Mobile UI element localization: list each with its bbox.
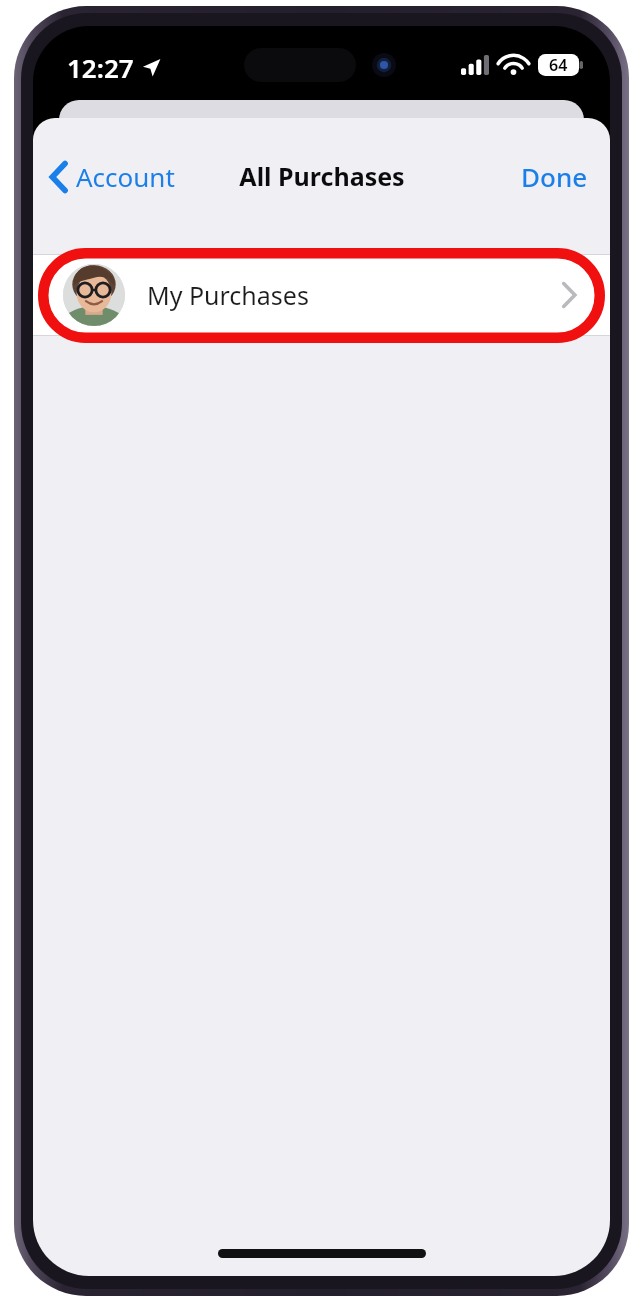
- button[interactable]: My Purchases: [33, 255, 610, 335]
- staticText: Done: [521, 159, 588, 194]
- staticText: 12:27: [67, 50, 134, 85]
- staticText: My Purchases: [147, 278, 309, 312]
- staticText: All Purchases: [239, 159, 405, 193]
- button[interactable]: Account: [33, 153, 185, 200]
- staticText: 64: [549, 54, 568, 76]
- button[interactable]: Done: [507, 153, 610, 200]
- staticText: Account: [76, 159, 175, 194]
